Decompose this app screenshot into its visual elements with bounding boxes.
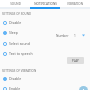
staticText: Sleep: [9, 30, 18, 35]
button[interactable]: PLAY: [67, 57, 84, 64]
staticText: VIBRATION: [67, 2, 83, 6]
staticText: SOUND: [10, 2, 21, 6]
staticText: Enable: [9, 86, 21, 90]
staticText: Text to speech: [9, 51, 33, 56]
button[interactable]: Text to speech: [0, 49, 45, 58]
button[interactable]: Add: [79, 86, 88, 90]
button[interactable]: Disable: [0, 18, 45, 27]
staticText: Disable: [9, 76, 22, 81]
staticText: SETTINGS OF VIBRATION: [2, 69, 37, 73]
button[interactable]: VIBRATION: [60, 0, 90, 7]
staticText: Number: [56, 34, 69, 38]
staticText: Disable: [9, 20, 22, 25]
staticText: SETTINGS OF SOUND: [2, 12, 32, 16]
button[interactable]: Enable: [0, 84, 45, 90]
button[interactable]: Sleep: [0, 28, 45, 37]
button[interactable]: SOUND: [0, 0, 30, 7]
staticText: 1: [74, 34, 76, 38]
staticText: PLAY: [72, 59, 79, 63]
staticText: NOTIFICATIONS: [34, 2, 57, 6]
button[interactable]: NOTIFICATIONS: [30, 0, 60, 7]
staticText: Select sound: [9, 41, 30, 46]
button[interactable]: Number: [45, 31, 90, 40]
button[interactable]: Disable: [0, 74, 45, 83]
button[interactable]: Select sound: [0, 39, 45, 48]
